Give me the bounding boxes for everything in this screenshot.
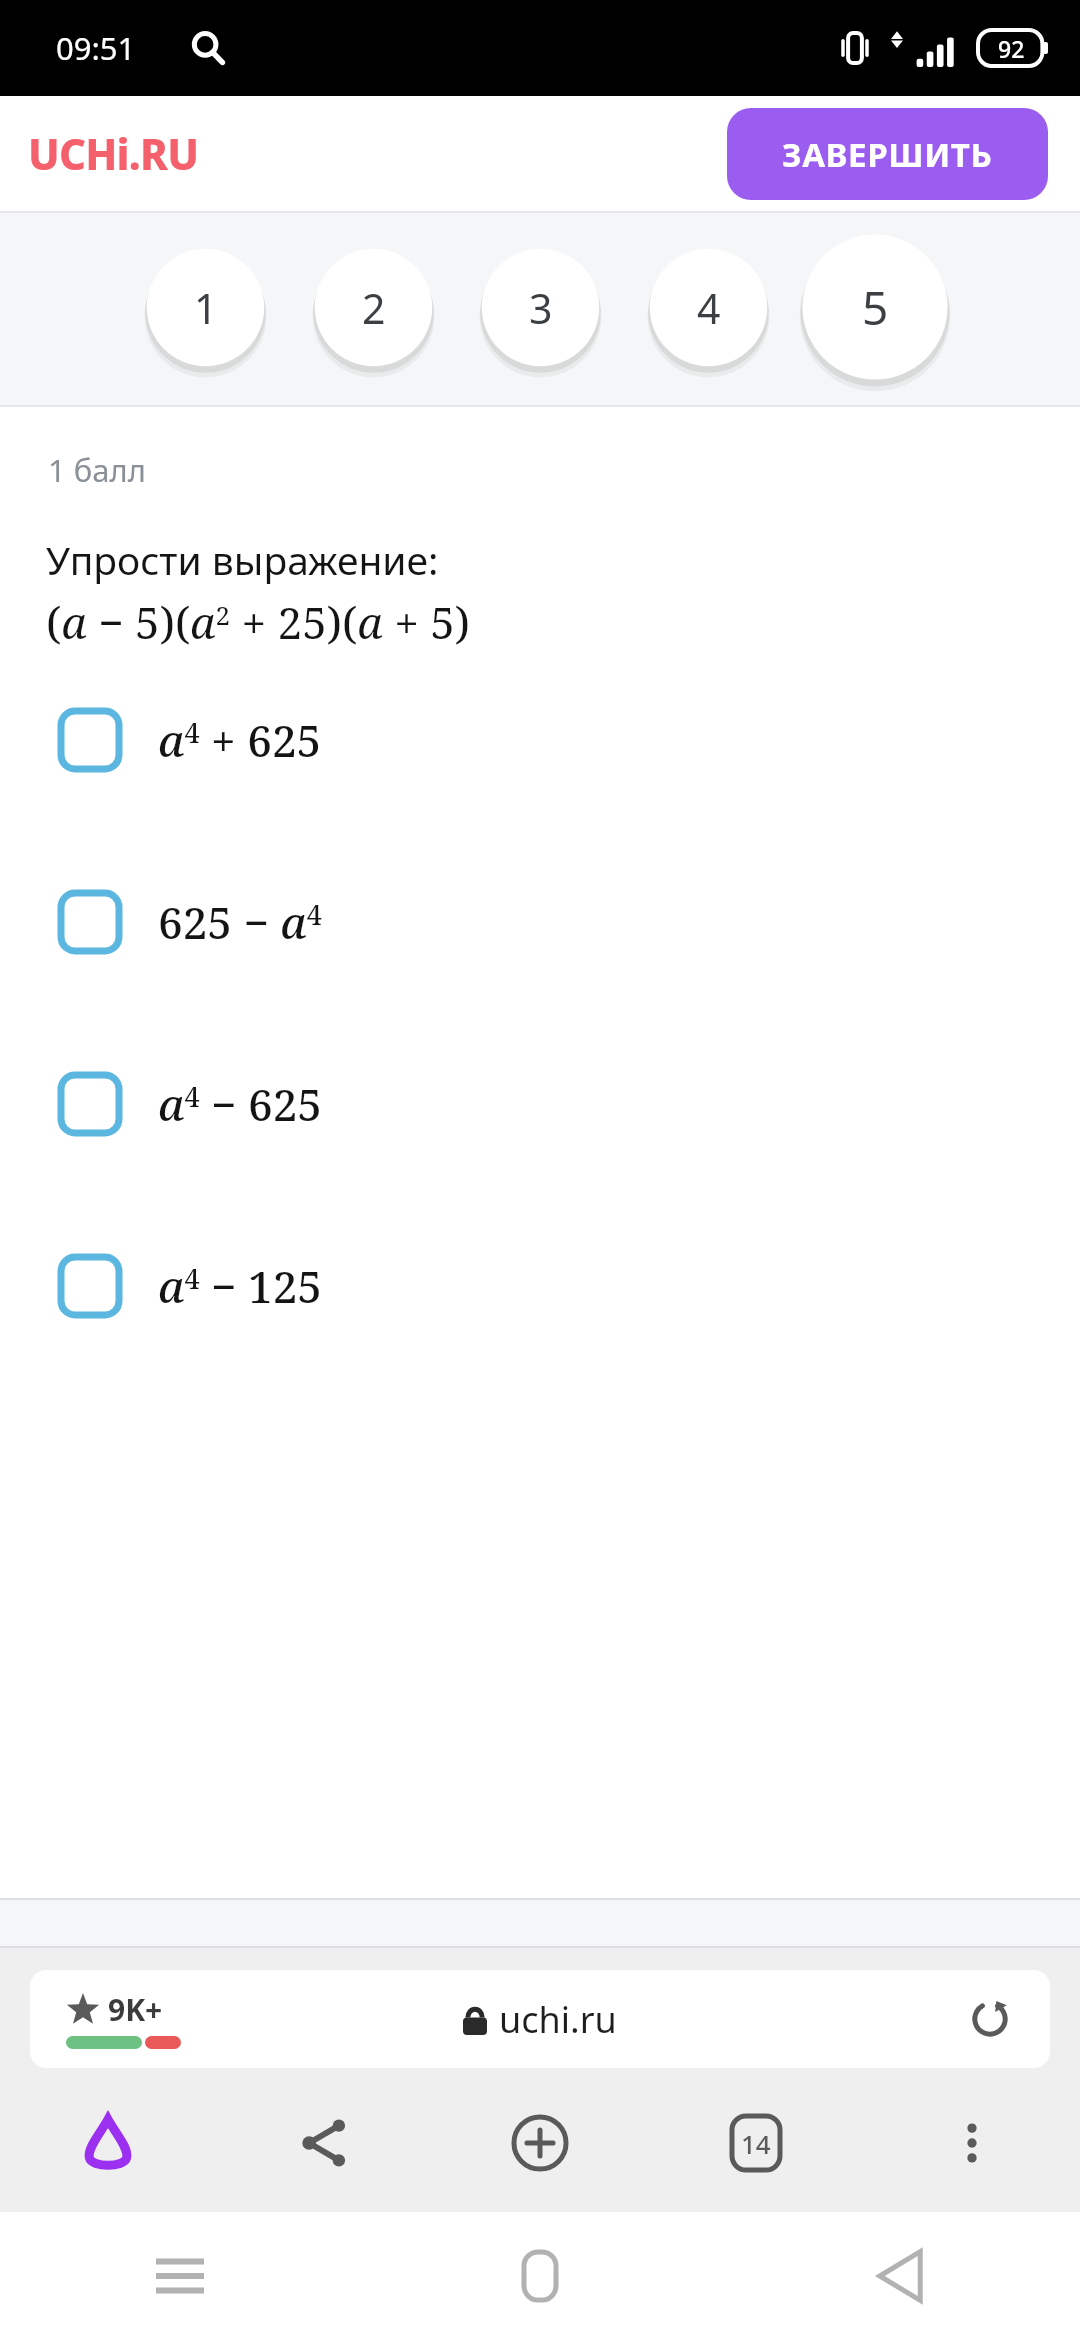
- button[interactable]: 1: [144, 246, 267, 369]
- button[interactable]: Share: [216, 2088, 432, 2198]
- other: Option 625 − a4: [58, 890, 122, 954]
- button[interactable]: Option 625 − a4: [0, 890, 1080, 954]
- staticText: (a − 5)(a2 + 25)(a + 5): [46, 592, 470, 652]
- staticText: 2: [362, 280, 386, 336]
- button[interactable]: Back: [720, 2212, 1080, 2340]
- button[interactable]: 5: [799, 231, 951, 383]
- staticText: 1 балл: [48, 449, 146, 491]
- other: Search: [190, 30, 226, 66]
- button[interactable]: 4: [647, 246, 770, 369]
- button[interactable]: New tab: [432, 2088, 648, 2198]
- staticText: uchi.ru: [499, 1995, 617, 2044]
- staticText: 14: [741, 2126, 771, 2161]
- button[interactable]: More options: [864, 2088, 1080, 2198]
- staticText: 92: [998, 33, 1025, 64]
- button[interactable]: Option a4 + 625: [0, 708, 1080, 772]
- staticText: Упрости выражение:: [46, 533, 439, 586]
- other: Option a4 − 125: [58, 1254, 122, 1318]
- button[interactable]: 2: [312, 246, 435, 369]
- button[interactable]: ЗАВЕРШИТЬ: [727, 108, 1048, 200]
- staticText: 9K+: [108, 1989, 163, 2030]
- button[interactable]: Menu: [0, 2212, 360, 2340]
- button[interactable]: 3: [479, 246, 602, 369]
- staticText: 4: [697, 280, 721, 336]
- button[interactable]: Home: [360, 2212, 720, 2340]
- staticText: a4 + 625: [158, 710, 322, 770]
- staticText: UCHi.RU: [28, 125, 199, 182]
- button[interactable]: Yandex: [0, 2088, 216, 2198]
- staticText: 09:51: [56, 27, 136, 69]
- staticText: 5: [862, 276, 889, 339]
- button[interactable]: 9K+: [30, 1970, 1050, 2068]
- button[interactable]: Tabs: [648, 2088, 864, 2198]
- other: Option a4 + 625: [58, 708, 122, 772]
- staticText: 3: [529, 280, 553, 336]
- other: Reload: [970, 1999, 1010, 2039]
- button[interactable]: Option a4 − 125: [0, 1254, 1080, 1318]
- other: Option a4 − 625: [58, 1072, 122, 1136]
- staticText: a4 − 625: [158, 1074, 322, 1134]
- staticText: a4 − 125: [158, 1256, 322, 1316]
- staticText: 625 − a4: [158, 892, 322, 952]
- staticText: ЗАВЕРШИТЬ: [782, 132, 993, 177]
- button[interactable]: Option a4 − 625: [0, 1072, 1080, 1136]
- staticText: 1: [194, 280, 218, 336]
